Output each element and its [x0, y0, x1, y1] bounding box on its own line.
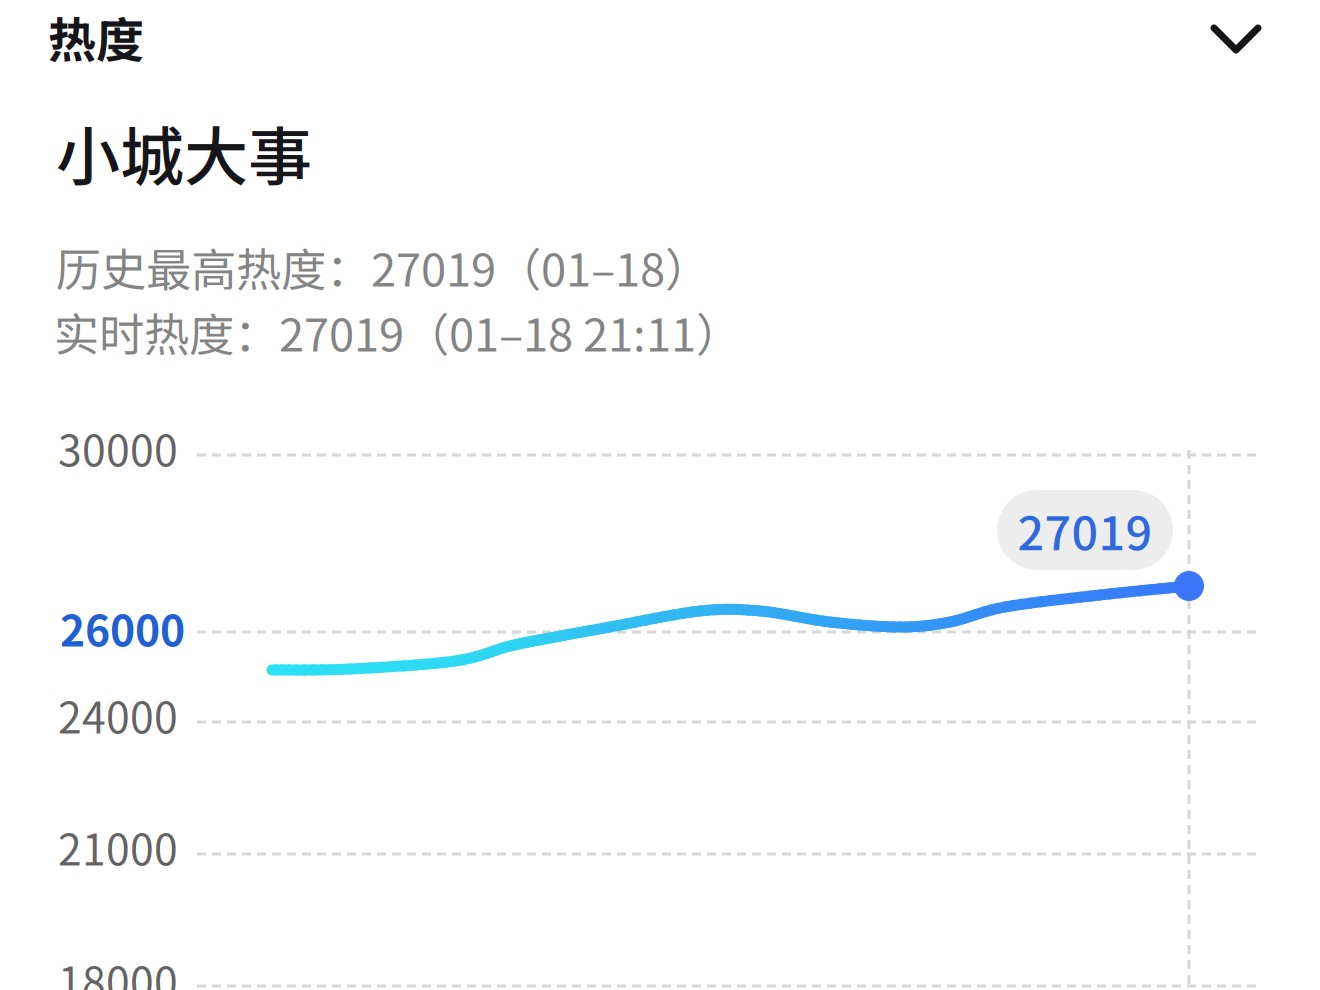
staticText: 27019	[1017, 496, 1152, 564]
staticText: 小城大事	[56, 106, 312, 199]
staticText: 热度	[48, 2, 144, 71]
staticText: 历史最高热度：27019（01–18）	[56, 234, 710, 300]
staticText: 26000	[60, 597, 185, 659]
staticText: 21000	[58, 816, 178, 878]
staticText: 实时热度：27019（01–18 21:11）	[54, 299, 741, 365]
staticText: 30000	[58, 417, 178, 479]
staticText: 24000	[58, 684, 178, 746]
staticText: 18000	[58, 949, 178, 990]
button[interactable]: Collapse	[1210, 24, 1262, 76]
